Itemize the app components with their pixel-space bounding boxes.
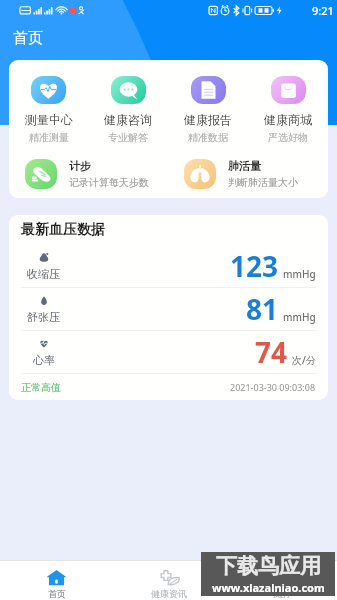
staticText: 123 xyxy=(230,247,279,285)
staticText: 收缩压 xyxy=(27,267,60,281)
staticText: 首页 xyxy=(48,588,66,599)
staticText: 健康资讯 xyxy=(151,588,187,599)
staticText: 74 xyxy=(255,333,288,371)
staticText: 精准测量 xyxy=(29,131,69,144)
staticText: mmHg xyxy=(283,267,316,281)
staticText: 严选好物 xyxy=(268,131,308,144)
staticText: 精准数据 xyxy=(188,131,228,144)
staticText: 最新血压数据 xyxy=(21,221,105,239)
staticText: 81 xyxy=(246,290,279,328)
staticText: 计步 xyxy=(69,159,91,173)
staticText: 正常高值 xyxy=(21,381,61,394)
button[interactable]: 健康咨询 xyxy=(88,76,168,144)
staticText: mmHg xyxy=(283,310,316,324)
staticText: www.xlazalniao.com xyxy=(212,580,325,595)
staticText: 舒张压 xyxy=(27,310,60,324)
staticText: 我的 xyxy=(272,588,290,599)
staticText: 心率 xyxy=(33,353,55,367)
staticText: 次/分 xyxy=(292,353,316,367)
staticText: 首页 xyxy=(13,29,43,48)
button[interactable]: 肺活量 xyxy=(168,159,328,189)
button[interactable]: 计步 xyxy=(9,159,168,189)
button[interactable]: 健康报告 xyxy=(168,76,248,144)
staticText: 2021-03-30 09:03:08 xyxy=(230,381,316,393)
staticText: 专业解答 xyxy=(108,131,148,144)
staticText: 9:21 xyxy=(312,3,334,18)
button[interactable]: 测量中心 xyxy=(9,76,88,144)
button[interactable]: 健康商城 xyxy=(248,76,328,144)
staticText: 肺活量 xyxy=(228,159,261,173)
button[interactable]: 我的 xyxy=(225,563,337,599)
staticText: 健康咨询 xyxy=(104,112,152,127)
staticText: 下载鸟应用 xyxy=(216,553,321,579)
staticText: 记录计算每天步数 xyxy=(69,176,149,189)
button[interactable]: 健康资讯 xyxy=(113,563,225,599)
staticText: 健康报告 xyxy=(184,112,232,127)
button[interactable]: 首页 xyxy=(0,563,113,599)
staticText: 健康商城 xyxy=(264,112,312,127)
staticText: 测量中心 xyxy=(25,112,73,127)
staticText: 判断肺活量大小 xyxy=(228,176,298,189)
